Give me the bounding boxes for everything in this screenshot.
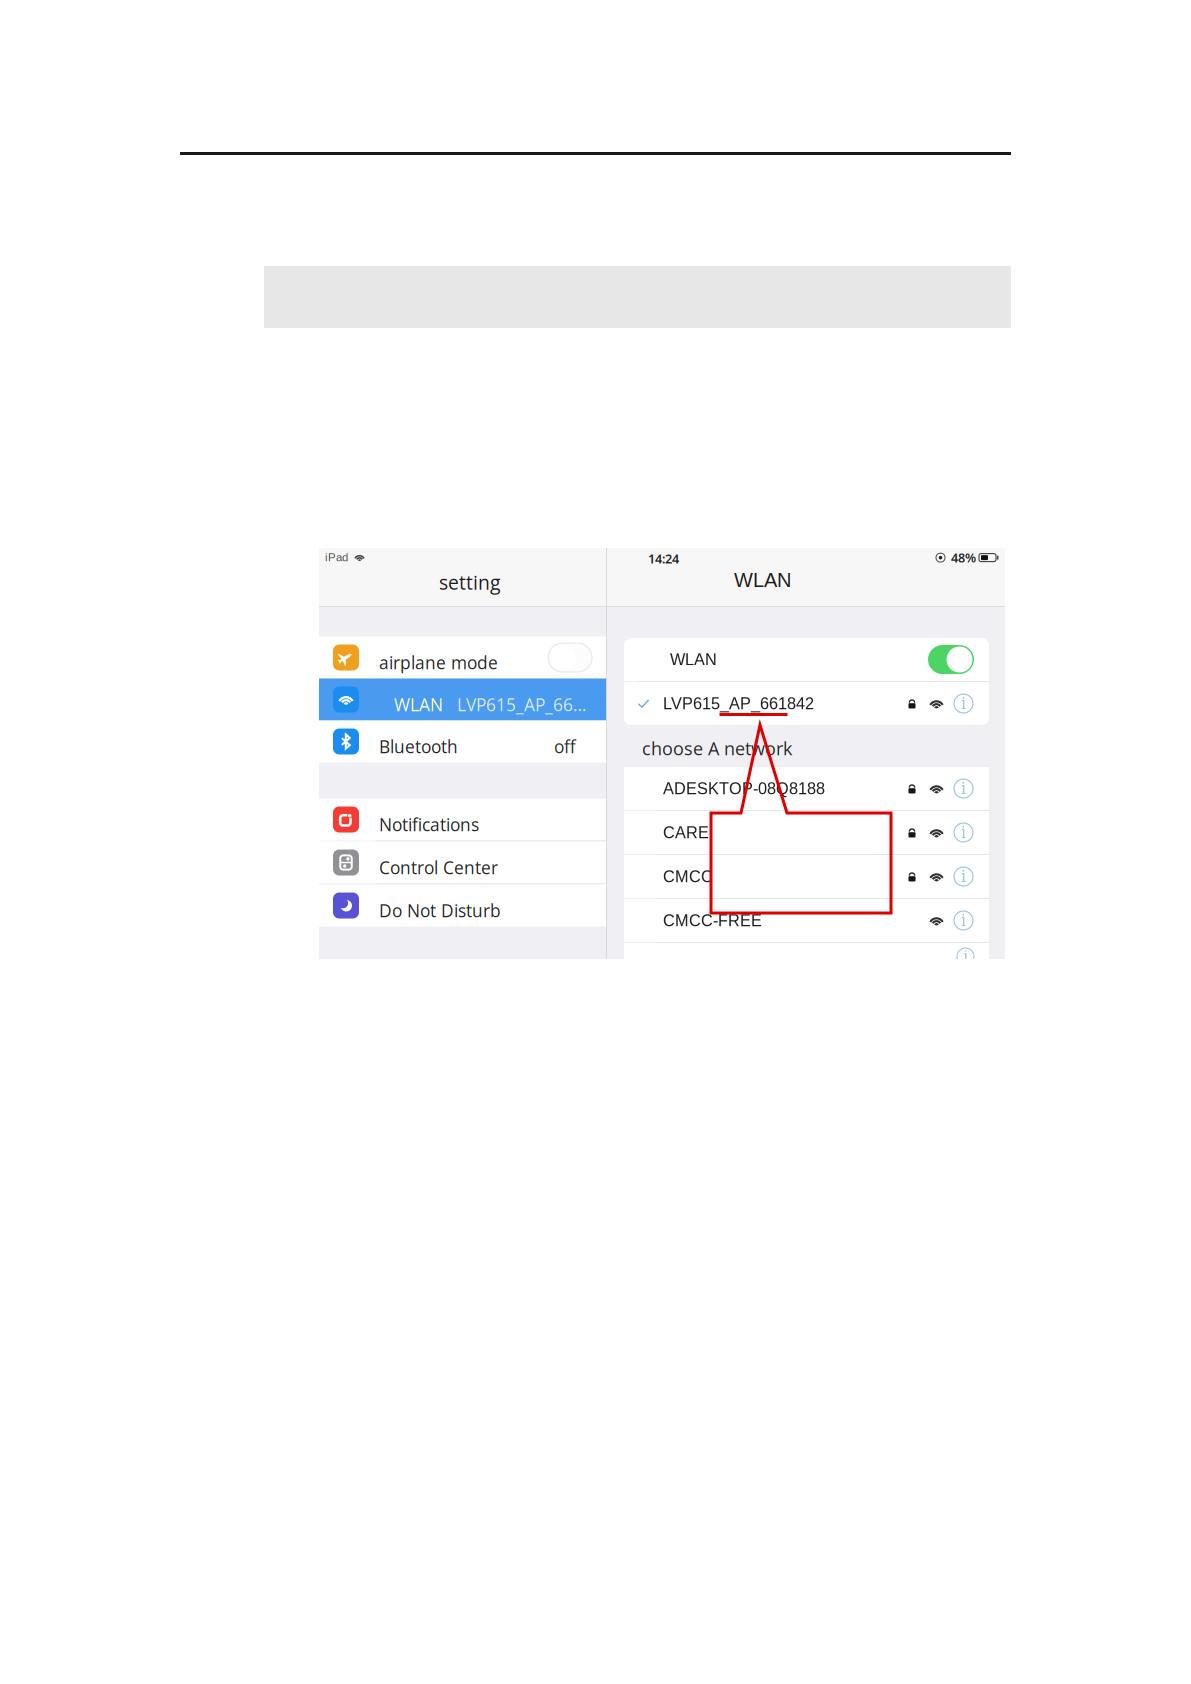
button[interactable]: ADESKTOP-08Q8188 — [624, 767, 989, 810]
staticText: choose A network — [642, 736, 792, 760]
button[interactable]: CMCC-FREE — [624, 899, 989, 942]
staticText: ADESKTOP-08Q8188 — [663, 779, 825, 798]
staticText: i — [961, 779, 966, 798]
staticText: i — [961, 867, 966, 886]
staticText: 14:24 — [648, 550, 679, 567]
staticText: Do Not Disturb — [379, 899, 501, 922]
button[interactable]: Control Center — [319, 841, 606, 883]
staticText: CMCC-FREE — [663, 911, 762, 930]
staticText: setting — [439, 569, 500, 595]
staticText: 48% — [951, 549, 976, 566]
staticText: iPad — [325, 551, 348, 564]
staticText: WLAN — [394, 693, 443, 716]
staticText: i — [961, 911, 966, 930]
staticText: CMCC — [663, 867, 713, 886]
staticText: LVP615_AP_66… — [457, 693, 586, 716]
staticText: LVP615_AP_661842 — [663, 694, 814, 713]
staticText: i — [961, 694, 966, 713]
button[interactable]: airplane mode — [319, 636, 606, 678]
button[interactable]: WLAN — [319, 678, 606, 720]
button[interactable]: WLAN — [624, 638, 989, 681]
staticText: Control Center — [379, 856, 498, 879]
button[interactable]: Bluetooth — [319, 720, 606, 762]
button[interactable]: CMCC — [624, 855, 989, 898]
staticText: Notifications — [379, 813, 479, 836]
staticText: WLAN — [670, 650, 717, 669]
staticText: Bluetooth — [379, 735, 458, 758]
staticText: CARE — [663, 823, 709, 842]
staticText: i — [961, 823, 966, 842]
staticText: airplane mode — [379, 651, 498, 674]
button[interactable]: Notifications — [319, 798, 606, 840]
button[interactable]: LVP615_AP_661842 — [624, 682, 989, 725]
staticText: i — [963, 948, 967, 965]
staticText: off — [554, 735, 576, 758]
button[interactable]: Do Not Disturb — [319, 884, 606, 926]
button[interactable]: CARE — [624, 811, 989, 854]
staticText: WLAN — [734, 569, 791, 591]
